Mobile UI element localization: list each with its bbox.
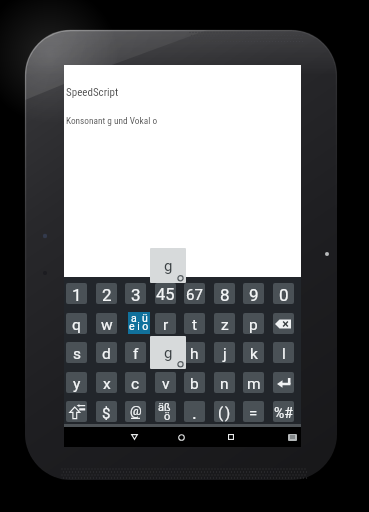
button[interactable]: g (150, 248, 186, 283)
button[interactable]: s (66, 342, 87, 363)
button[interactable]: $ (96, 401, 117, 422)
button[interactable] (273, 313, 294, 334)
staticText: 3 (131, 285, 141, 304)
staticText: b (190, 375, 199, 393)
staticText: %# (274, 405, 293, 421)
button[interactable]: f (125, 342, 146, 363)
staticText: q (72, 316, 81, 334)
button[interactable] (288, 434, 297, 441)
button[interactable]: 0 (273, 283, 294, 304)
button[interactable]: a ü (128, 312, 150, 334)
staticText: f (133, 345, 139, 363)
staticText: $ (102, 404, 111, 422)
button[interactable]: n (214, 372, 235, 393)
button[interactable]: 8 (214, 283, 235, 304)
button[interactable]: d (96, 342, 117, 363)
button[interactable]: h (184, 342, 205, 363)
button[interactable]: q (66, 313, 87, 334)
button[interactable]: v (155, 372, 176, 393)
staticText: h (190, 345, 199, 363)
button[interactable]: l (273, 342, 294, 363)
staticText: @ (130, 403, 142, 418)
staticText: d (102, 345, 111, 363)
staticText: SpeedScript (66, 86, 119, 99)
button[interactable] (224, 431, 237, 443)
staticText: t (192, 316, 198, 334)
staticText: 0 (279, 285, 289, 304)
button[interactable] (175, 431, 188, 443)
button[interactable]: z (214, 313, 235, 334)
button[interactable]: 9 (243, 283, 264, 304)
staticText: g (164, 257, 173, 275)
button[interactable]: 1 (66, 283, 87, 304)
staticText: 67 (186, 286, 203, 304)
button[interactable]: p (243, 313, 264, 334)
button[interactable] (66, 401, 87, 422)
button[interactable]: 2 (96, 283, 117, 304)
button[interactable] (128, 431, 141, 443)
button[interactable]: t (184, 313, 205, 334)
button[interactable]: äß (155, 401, 176, 422)
staticText: c (131, 375, 140, 393)
button[interactable]: 45 (155, 283, 176, 304)
staticText: j (223, 345, 227, 363)
staticText: k (250, 345, 258, 363)
button[interactable]: k (243, 342, 264, 363)
button[interactable]: b (184, 372, 205, 393)
staticText: g (164, 344, 173, 362)
button[interactable]: c (125, 372, 146, 393)
staticText: s (73, 345, 81, 363)
staticText: y (73, 375, 81, 393)
staticText: 8 (220, 285, 230, 304)
button[interactable]: j (214, 342, 235, 363)
button[interactable]: r (155, 313, 176, 334)
button[interactable]: w (96, 313, 117, 334)
button[interactable]: = (243, 401, 264, 422)
staticText: ö (164, 410, 171, 422)
staticText: = (249, 404, 258, 422)
staticText: äß (158, 401, 171, 414)
staticText: w (101, 316, 113, 334)
button[interactable]: . (184, 401, 205, 422)
staticText: e i o (129, 320, 149, 332)
staticText: v (162, 375, 170, 393)
staticText: r (163, 316, 169, 334)
staticText: 2 (102, 285, 112, 304)
staticText: a ü (131, 312, 148, 324)
staticText: 45 (156, 285, 175, 304)
staticText: . (192, 402, 197, 422)
button[interactable]: 3 (125, 283, 146, 304)
staticText: m (247, 375, 261, 393)
button[interactable] (273, 372, 294, 393)
staticText: () (218, 404, 232, 422)
button[interactable]: 67 (184, 283, 205, 304)
button[interactable]: y (66, 372, 87, 393)
button[interactable]: () (214, 401, 235, 422)
button[interactable]: g (150, 336, 186, 369)
staticText: 1 (72, 285, 82, 304)
staticText: 9 (249, 285, 259, 304)
staticText: p (249, 316, 258, 334)
staticText: x (103, 375, 111, 393)
staticText: Konsonant g und Vokal o (66, 115, 158, 126)
button[interactable]: %# (273, 401, 294, 422)
button[interactable]: x (96, 372, 117, 393)
button[interactable]: m (243, 372, 264, 393)
staticText: n (220, 375, 229, 393)
staticText: l (282, 345, 286, 363)
staticText: z (221, 316, 229, 334)
button[interactable]: @ (125, 401, 146, 422)
